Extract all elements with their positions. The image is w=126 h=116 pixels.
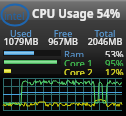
staticText: 12% [105, 66, 124, 75]
button[interactable]: Total [84, 27, 126, 39]
button[interactable]: Free [42, 27, 84, 39]
staticText: CPU Usage 54% [32, 6, 121, 22]
staticText: Core 2 [64, 66, 93, 75]
button[interactable]: CPU Usage 54% [0, 0, 126, 20]
staticText: 2046MB [84, 35, 126, 47]
button[interactable]: Used [0, 27, 42, 39]
staticText: Core 1 [64, 57, 93, 66]
staticText: intel [4, 9, 25, 23]
button[interactable]: Ram [0, 48, 126, 57]
staticText: Ram [64, 48, 85, 57]
button[interactable]: CPU history graph [3, 78, 122, 111]
button[interactable]: Core 2 [0, 66, 126, 75]
staticText: 95% [105, 57, 124, 66]
button[interactable]: Core 1 [0, 57, 126, 66]
staticText: 53% [105, 48, 124, 57]
staticText: 1079MB [0, 35, 42, 47]
staticText: 967MB [42, 35, 84, 47]
